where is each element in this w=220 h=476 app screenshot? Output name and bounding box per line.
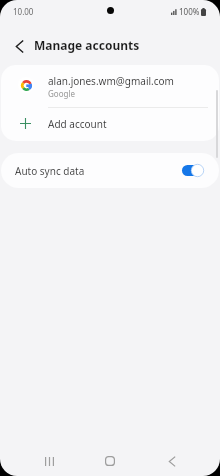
button[interactable]: Navigate up — [7, 34, 31, 58]
staticText: 100% — [179, 6, 200, 17]
button[interactable]: Back — [153, 442, 191, 476]
button[interactable]: Add account — [1, 106, 219, 141]
button[interactable]: Auto sync data — [1, 153, 219, 188]
staticText: Manage accounts — [34, 37, 140, 53]
staticText: Auto sync data — [15, 164, 85, 178]
button[interactable]: Home — [91, 442, 129, 476]
button[interactable]: alan.jones.wm@gmail.com — [1, 65, 219, 105]
staticText: 10.00 — [13, 6, 34, 17]
staticText: alan.jones.wm@gmail.com — [48, 74, 174, 88]
staticText: Add account — [48, 117, 107, 131]
staticText: Google — [48, 88, 75, 99]
button[interactable]: Recent apps — [30, 442, 68, 476]
